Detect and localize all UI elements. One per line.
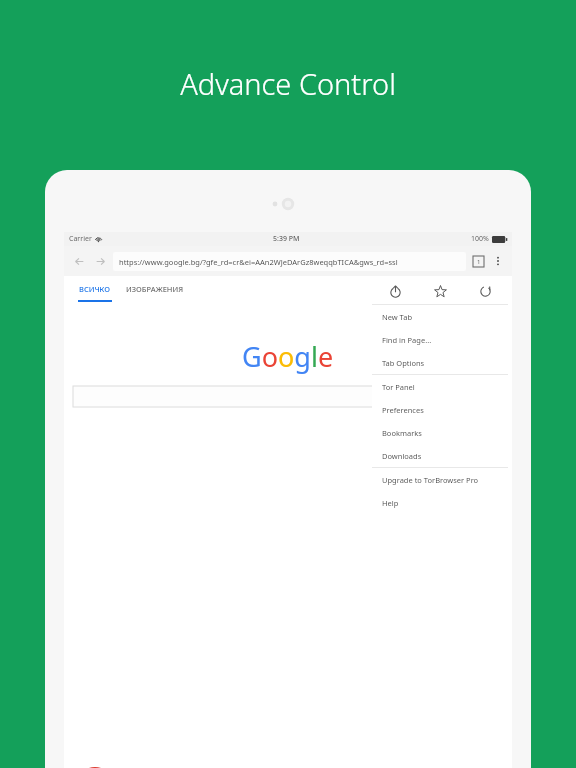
button[interactable]: Reload: [463, 278, 508, 304]
button[interactable]: ВСИЧКО: [78, 284, 112, 302]
button[interactable]: Upgrade to TorBrowser Pro: [372, 468, 508, 491]
staticText: Upgrade to TorBrowser Pro: [382, 475, 479, 485]
button[interactable]: Preferences: [372, 398, 508, 421]
button[interactable]: Tor Panel: [372, 375, 508, 398]
button[interactable]: Forward: [91, 252, 109, 270]
button[interactable]: Tab Options: [372, 351, 508, 374]
staticText: Tor Panel: [382, 382, 415, 392]
button[interactable]: [73, 386, 503, 407]
staticText: Bookmarks: [382, 428, 422, 438]
button[interactable]: https://www.google.bg/?gfe_rd=cr&ei=AAn2…: [119, 252, 460, 271]
staticText: Help: [382, 498, 399, 508]
button[interactable]: Find in Page...: [372, 328, 508, 351]
button[interactable]: Bookmark: [418, 278, 463, 304]
staticText: Advance Control: [180, 64, 396, 103]
staticText: 100%: [471, 234, 489, 244]
button[interactable]: Back: [70, 252, 88, 270]
button[interactable]: Downloads: [372, 444, 508, 467]
button[interactable]: More options: [490, 253, 506, 269]
staticText: Find in Page...: [382, 335, 432, 345]
staticText: 5:39 PM: [273, 234, 300, 244]
staticText: ВСИЧКО: [79, 284, 111, 294]
button[interactable]: Share: [372, 278, 418, 304]
staticText: 1: [477, 258, 481, 266]
staticText: Google: [242, 338, 334, 375]
staticText: Preferences: [382, 405, 424, 415]
button[interactable]: Help: [372, 491, 508, 514]
button[interactable]: Play: [76, 767, 114, 768]
staticText: Downloads: [382, 451, 422, 461]
button[interactable]: New Tab: [372, 305, 508, 328]
staticText: New Tab: [382, 312, 413, 322]
button[interactable]: Tabs: [472, 255, 485, 268]
staticText: ИЗОБРАЖЕНИЯ: [126, 284, 184, 294]
staticText: Carrier: [69, 234, 92, 244]
button[interactable]: Bookmarks: [372, 421, 508, 444]
button[interactable]: ИЗОБРАЖЕНИЯ: [126, 284, 184, 294]
staticText: Tab Options: [382, 358, 425, 368]
staticText: https://www.google.bg/?gfe_rd=cr&ei=AAn2…: [119, 257, 398, 267]
